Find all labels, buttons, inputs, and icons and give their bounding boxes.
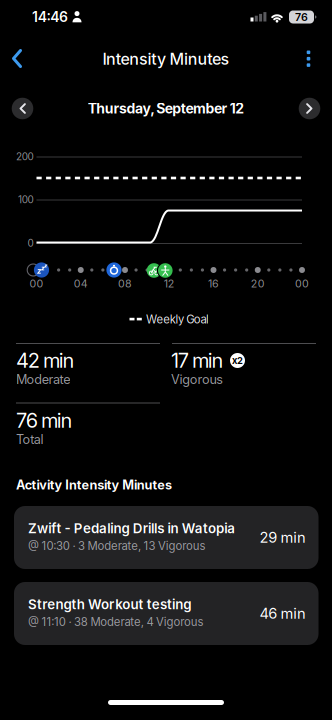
staticText: @ 10:30 · 3 Moderate, 13 Vigorous	[28, 539, 206, 553]
staticText: 76 min	[16, 408, 72, 433]
staticText: 04	[74, 277, 88, 290]
staticText: 00	[295, 277, 309, 290]
button[interactable]: Back	[0, 41, 34, 75]
staticText: 08	[118, 277, 132, 290]
staticText: Zwift - Pedaling Drills in Watopia	[28, 520, 235, 536]
button[interactable]: Next day	[298, 97, 320, 119]
staticText: 76	[295, 10, 308, 23]
staticText: 0	[27, 237, 33, 249]
staticText: Intensity Minutes	[102, 49, 230, 69]
staticText: 16	[208, 277, 219, 290]
staticText: 29 min	[259, 529, 306, 546]
staticText: Strength Workout testing	[28, 596, 191, 612]
staticText: 42 min	[16, 348, 74, 373]
staticText: x2	[232, 355, 243, 366]
staticText: 46 min	[259, 605, 306, 622]
staticText: Total	[16, 432, 43, 447]
staticText: Weekly Goal	[146, 312, 209, 326]
staticText: 20	[251, 277, 265, 290]
button[interactable]: More options	[291, 41, 325, 75]
staticText: Vigorous	[171, 372, 223, 387]
staticText: 17 min	[171, 348, 223, 373]
staticText: 200	[16, 150, 33, 163]
staticText: @ 11:10 · 38 Moderate, 4 Vigorous	[28, 615, 204, 629]
staticText: Activity Intensity Minutes	[16, 477, 172, 493]
staticText: 100	[18, 193, 33, 206]
staticText: Thursday, September 12	[88, 100, 244, 117]
staticText: 00	[30, 277, 43, 290]
staticText: 14:46	[32, 8, 68, 25]
button[interactable]: Zwift - Pedaling Drills in Watopia	[14, 506, 318, 569]
button[interactable]: Strength Workout testing	[14, 582, 318, 645]
button[interactable]: Previous day	[11, 97, 33, 119]
staticText: 12	[164, 277, 175, 290]
staticText: Moderate	[16, 372, 70, 387]
